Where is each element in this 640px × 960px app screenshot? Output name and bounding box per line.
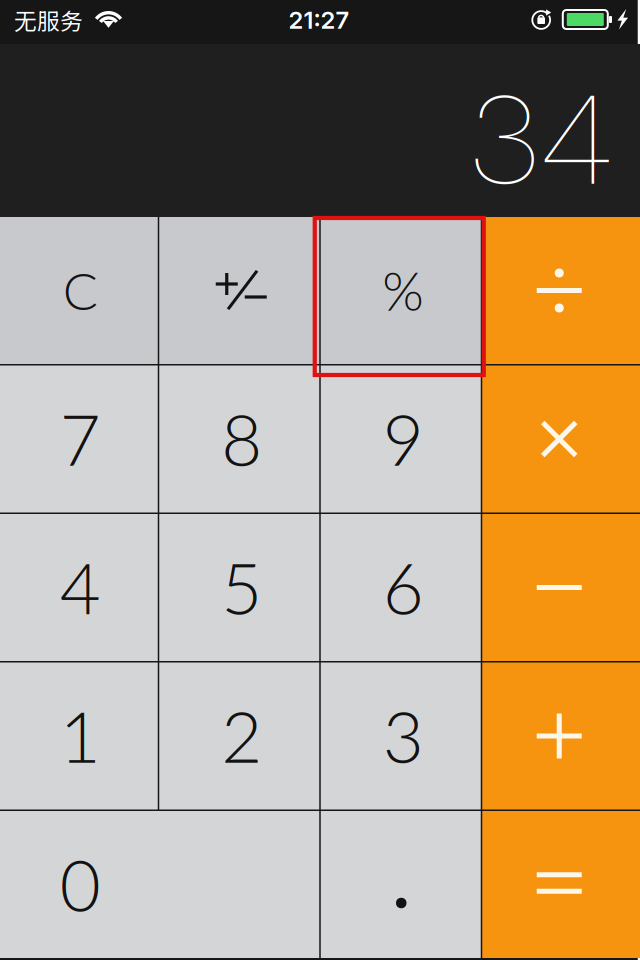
- staticText: 0: [60, 842, 101, 926]
- button[interactable]: Equals: [482, 811, 640, 958]
- button[interactable]: Minus: [482, 514, 640, 661]
- staticText: 34: [470, 57, 612, 222]
- button[interactable]: 1: [0, 662, 158, 809]
- button[interactable]: 8: [159, 365, 319, 512]
- staticText: %: [382, 258, 424, 322]
- staticText: C: [63, 259, 98, 321]
- staticText: 8: [221, 396, 262, 481]
- staticText: 6: [383, 545, 424, 629]
- button[interactable]: Divide: [482, 217, 640, 364]
- staticText: 5: [221, 545, 262, 629]
- button[interactable]: Plus: [482, 662, 640, 809]
- staticText: 无服务: [14, 3, 83, 36]
- staticText: 1: [60, 693, 101, 778]
- button[interactable]: 5: [159, 514, 319, 661]
- button[interactable]: Plus minus: [159, 217, 319, 364]
- button[interactable]: 7: [0, 365, 158, 512]
- button[interactable]: 9: [321, 365, 481, 512]
- button[interactable]: 4: [0, 514, 158, 661]
- button[interactable]: %: [321, 217, 481, 364]
- staticText: 9: [383, 396, 424, 481]
- staticText: 2: [221, 693, 262, 778]
- button[interactable]: 0: [0, 811, 319, 958]
- staticText: 4: [60, 545, 101, 629]
- staticText: 7: [60, 396, 101, 481]
- button[interactable]: 2: [159, 662, 319, 809]
- staticText: 3: [383, 693, 424, 778]
- staticText: 21:27: [288, 5, 349, 34]
- button[interactable]: Multiply: [482, 365, 640, 512]
- button[interactable]: Decimal point: [321, 811, 481, 958]
- button[interactable]: 6: [321, 514, 481, 661]
- button[interactable]: C: [0, 217, 158, 364]
- button[interactable]: 3: [321, 662, 481, 809]
